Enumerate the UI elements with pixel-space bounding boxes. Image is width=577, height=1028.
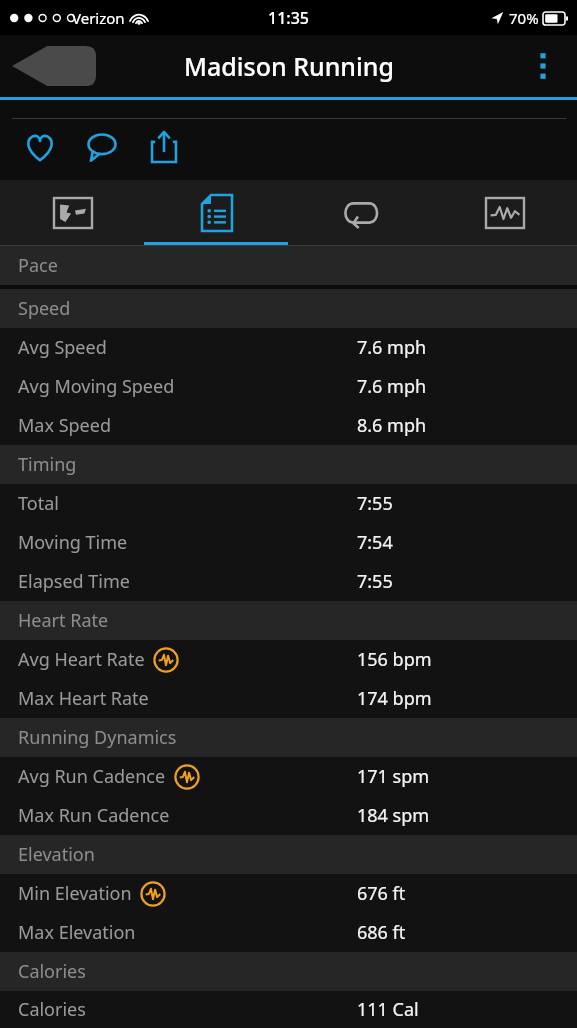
staticText: Running Dynamics [18, 725, 177, 750]
button[interactable]: Total [0, 484, 577, 523]
button[interactable]: Avg Heart Rate [0, 640, 577, 679]
staticText: Max Heart Rate [18, 686, 149, 711]
staticText: 7:55 [357, 491, 393, 516]
staticText: 174 bpm [357, 686, 432, 711]
staticText: 7.6 mph [357, 335, 427, 360]
button[interactable]: Avg Speed [0, 328, 577, 367]
staticText: Avg Run Cadence [18, 764, 166, 789]
staticText: 686 ft [357, 920, 406, 945]
staticText: Verizon [72, 8, 125, 28]
button[interactable]: Min Elevation [0, 874, 577, 913]
button[interactable]: Map [0, 180, 145, 246]
button[interactable]: Like [14, 121, 66, 173]
staticText: Madison Running [184, 49, 394, 83]
button[interactable]: Back [12, 46, 96, 86]
staticText: Max Speed [18, 413, 111, 438]
button[interactable]: Charts [433, 180, 577, 246]
staticText: 70% [509, 8, 539, 28]
staticText: Heart Rate [18, 608, 109, 633]
staticText: 7.6 mph [357, 374, 427, 399]
button[interactable]: Moving Time [0, 523, 577, 562]
staticText: 7:54 [357, 530, 393, 555]
staticText: Min Elevation [18, 881, 132, 906]
staticText: Avg Speed [18, 335, 107, 360]
button[interactable]: Laps [289, 180, 433, 246]
staticText: Max Elevation [18, 920, 136, 945]
button[interactable]: Details [145, 180, 289, 246]
button[interactable]: Avg Moving Speed [0, 367, 577, 406]
staticText: 7:55 [357, 569, 393, 594]
staticText: Avg Heart Rate [18, 647, 145, 672]
button[interactable]: Max Elevation [0, 913, 577, 952]
button[interactable]: Max Heart Rate [0, 679, 577, 718]
staticText: 676 ft [357, 881, 406, 906]
staticText: 8.6 mph [357, 413, 427, 438]
button[interactable]: Max Speed [0, 406, 577, 445]
staticText: 184 spm [357, 803, 430, 828]
staticText: Calories [18, 959, 86, 984]
staticText: Calories [18, 997, 86, 1022]
button[interactable]: Calories [0, 991, 577, 1028]
staticText: Total [18, 491, 59, 516]
button[interactable]: Max Run Cadence [0, 796, 577, 835]
staticText: 111 Cal [357, 997, 419, 1022]
button[interactable]: Share [138, 121, 190, 173]
staticText: Elapsed Time [18, 569, 130, 594]
staticText: Elevation [18, 842, 95, 867]
staticText: Timing [18, 452, 77, 477]
button[interactable]: Comment [76, 121, 128, 173]
staticText: Speed [18, 296, 71, 321]
staticText: Moving Time [18, 530, 128, 555]
button[interactable]: Elapsed Time [0, 562, 577, 601]
staticText: 156 bpm [357, 647, 432, 672]
button[interactable]: More options [523, 43, 563, 89]
button[interactable]: Avg Run Cadence [0, 757, 577, 796]
staticText: Avg Moving Speed [18, 374, 175, 399]
staticText: 171 spm [357, 764, 430, 789]
staticText: Max Run Cadence [18, 803, 170, 828]
staticText: 11:35 [268, 7, 309, 29]
staticText: Pace [18, 253, 58, 278]
